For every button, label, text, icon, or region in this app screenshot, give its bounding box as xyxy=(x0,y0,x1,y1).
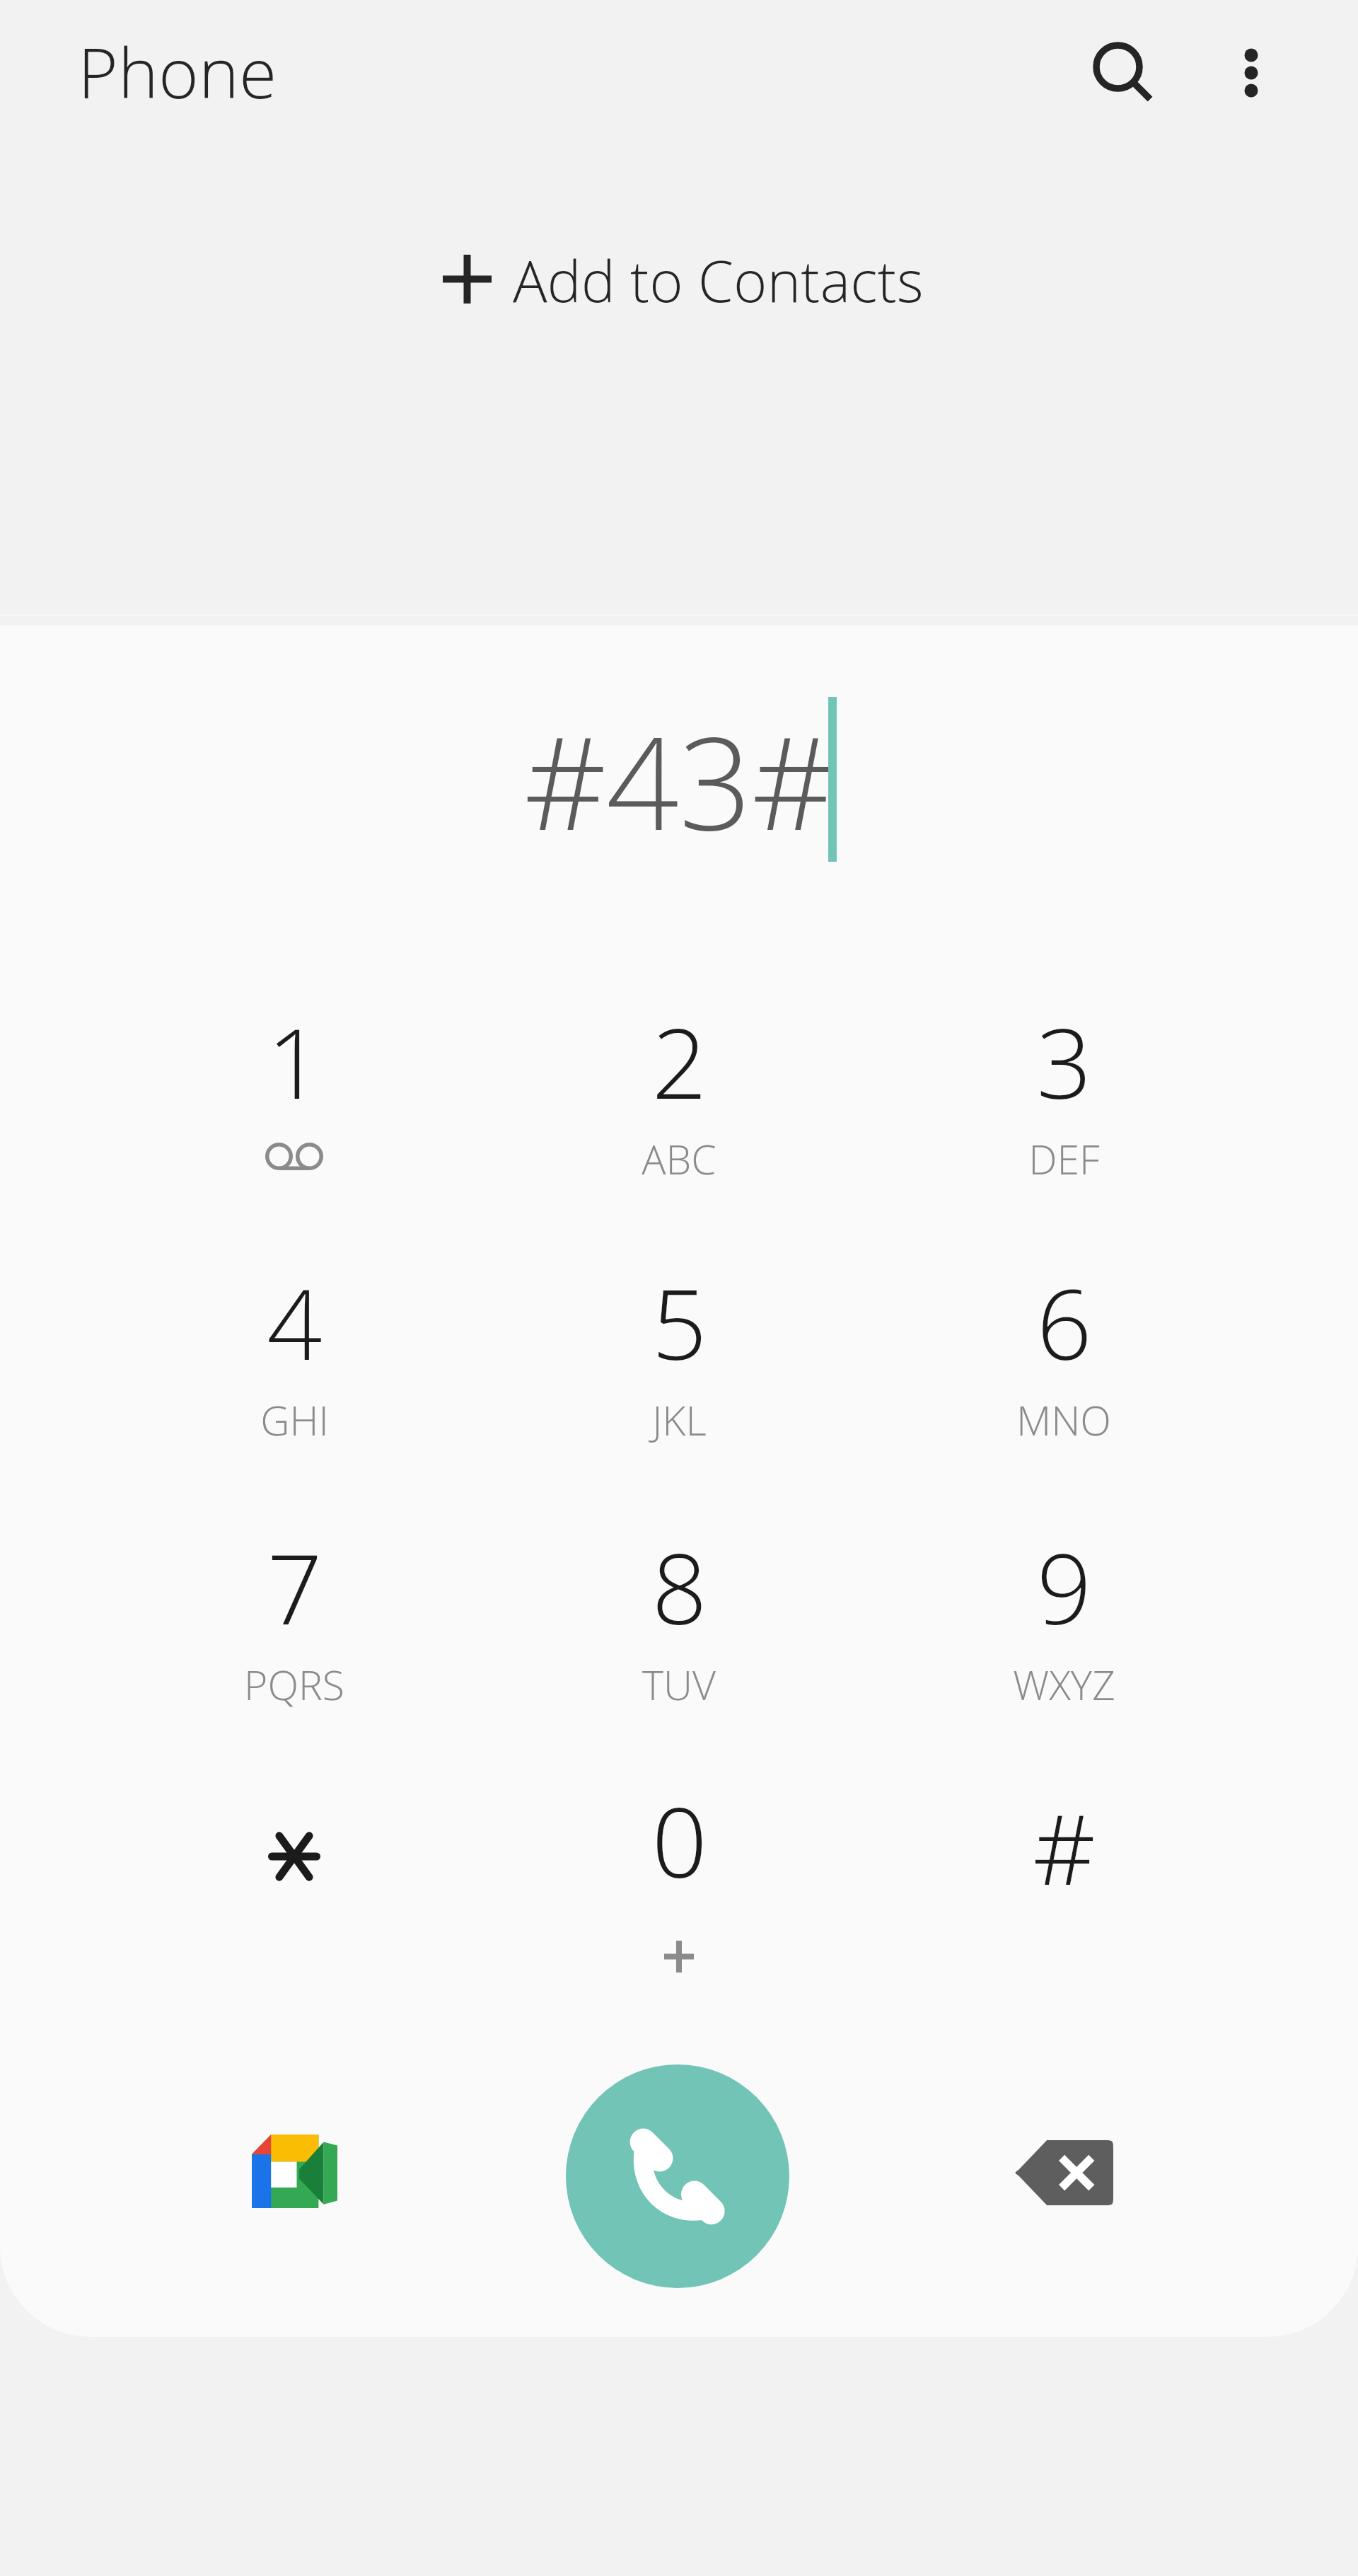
staticText: Phone xyxy=(78,25,277,118)
staticText: MNO xyxy=(1016,1392,1111,1448)
button[interactable]: 7 xyxy=(167,1521,422,1755)
button[interactable]: # xyxy=(936,1774,1191,2008)
staticText: WXYZ xyxy=(1013,1657,1115,1712)
staticText: 8 xyxy=(651,1521,707,1653)
staticText: 0 xyxy=(651,1774,707,1907)
button[interactable]: Call xyxy=(566,2064,789,2288)
staticText: 4 xyxy=(267,1257,323,1389)
button[interactable]: Video call xyxy=(209,2086,379,2256)
button[interactable]: 8 xyxy=(552,1521,806,1755)
button[interactable]: Add to Contacts xyxy=(400,229,966,328)
staticText: GHI xyxy=(260,1392,329,1448)
button[interactable]: Backspace xyxy=(979,2088,1149,2258)
staticText: TUV xyxy=(642,1657,716,1712)
button[interactable]: 9 xyxy=(936,1521,1191,1755)
staticText: 6 xyxy=(1036,1257,1092,1389)
staticText: ABC xyxy=(642,1131,716,1186)
staticText: 5 xyxy=(651,1257,707,1389)
staticText: # xyxy=(1033,1781,1096,1914)
button[interactable] xyxy=(167,1774,422,2008)
staticText: 1 xyxy=(267,995,323,1128)
button[interactable]: 3 xyxy=(936,995,1191,1229)
staticText: 2 xyxy=(651,995,707,1128)
button[interactable]: 6 xyxy=(936,1257,1191,1490)
staticText: 9 xyxy=(1036,1521,1092,1653)
staticText: 7 xyxy=(267,1521,323,1653)
button[interactable]: 5 xyxy=(552,1257,806,1490)
button[interactable]: Search xyxy=(1064,13,1178,127)
button[interactable]: More options xyxy=(1195,16,1308,129)
staticText: JKL xyxy=(652,1392,707,1448)
button[interactable]: 0 xyxy=(552,1774,806,2008)
staticText: 3 xyxy=(1036,995,1092,1128)
staticText: DEF xyxy=(1028,1131,1100,1186)
staticText: PQRS xyxy=(244,1657,344,1712)
button[interactable]: 1 xyxy=(167,995,422,1229)
button[interactable]: 2 xyxy=(552,995,806,1229)
staticText: Add to Contacts xyxy=(513,241,924,318)
button[interactable]: 4 xyxy=(167,1257,422,1490)
staticText: #43# xyxy=(524,694,835,867)
